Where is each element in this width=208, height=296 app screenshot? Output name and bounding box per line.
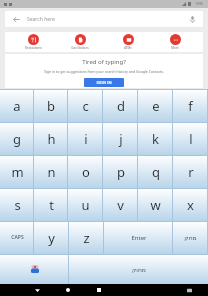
button[interactable]: SIGN IN: [84, 78, 124, 87]
button[interactable]: r: [173, 155, 208, 188]
button[interactable]: Switch keyboard: [183, 284, 195, 296]
staticText: v: [117, 196, 124, 214]
button[interactable]: i: [68, 122, 103, 155]
staticText: b: [47, 97, 55, 115]
button[interactable]: y: [34, 221, 69, 254]
staticText: n: [47, 163, 56, 181]
button[interactable]: t: [34, 188, 68, 221]
staticText: CAPS: [11, 234, 24, 241]
staticText: i: [84, 130, 88, 148]
button[interactable]: Hide keyboard: [31, 284, 43, 296]
button[interactable]: j: [103, 122, 138, 155]
button[interactable]: o: [68, 155, 103, 188]
staticText: h: [47, 130, 56, 148]
button[interactable]: מחוק: [69, 254, 208, 284]
other: Back: [11, 14, 21, 24]
staticText: Search here: [27, 16, 55, 23]
staticText: s: [14, 196, 21, 214]
staticText: t: [49, 196, 54, 214]
other: Voice search: [187, 14, 197, 24]
button[interactable]: q: [138, 155, 173, 188]
staticText: c: [82, 97, 89, 115]
staticText: Restaurants: [25, 46, 42, 50]
staticText: g: [13, 130, 21, 148]
staticText: a: [13, 97, 21, 115]
staticText: ATMs: [124, 46, 132, 50]
button[interactable]: c: [68, 89, 103, 122]
button[interactable]: e: [138, 89, 173, 122]
button[interactable]: k: [138, 122, 173, 155]
staticText: q: [152, 163, 160, 181]
button[interactable]: s: [0, 188, 34, 221]
button[interactable]: b: [34, 89, 68, 122]
button[interactable]: Restaurants: [13, 33, 53, 51]
button[interactable]: More: [155, 33, 195, 51]
staticText: u: [81, 196, 90, 214]
button[interactable]: Back: [5, 11, 203, 27]
staticText: z: [83, 229, 90, 247]
button[interactable]: f: [173, 89, 208, 122]
staticText: More: [171, 46, 179, 50]
button[interactable]: p: [103, 155, 138, 188]
staticText: SIGN IN: [96, 80, 112, 85]
staticText: מחק: [184, 234, 197, 241]
button[interactable]: a: [0, 89, 34, 122]
button[interactable]: Emoji: [0, 254, 69, 284]
button[interactable]: l: [173, 122, 208, 155]
staticText: e: [152, 97, 160, 115]
staticText: x: [187, 196, 194, 214]
button[interactable]: z: [69, 221, 104, 254]
staticText: f: [188, 97, 193, 115]
button[interactable]: Enter: [104, 221, 173, 254]
staticText: k: [152, 130, 159, 148]
button[interactable]: h: [34, 122, 68, 155]
staticText: j: [119, 130, 123, 148]
staticText: Gas Stations: [71, 46, 89, 50]
button[interactable]: Gas Stations: [60, 33, 100, 51]
staticText: 19:06: [195, 2, 203, 6]
button[interactable]: g: [0, 122, 34, 155]
staticText: l: [189, 130, 193, 148]
button[interactable]: n: [34, 155, 68, 188]
button[interactable]: CAPS: [0, 221, 34, 254]
button[interactable]: u: [68, 188, 103, 221]
button[interactable]: d: [103, 89, 138, 122]
staticText: Tired of typing?: [82, 58, 126, 66]
staticText: Sign in to get suggestions from your sea…: [15, 69, 193, 74]
staticText: מחוק: [132, 266, 146, 273]
button[interactable]: x: [173, 188, 208, 221]
staticText: p: [117, 163, 125, 181]
staticText: d: [117, 97, 125, 115]
button[interactable]: Home: [62, 284, 74, 296]
button[interactable]: ATMs: [108, 33, 148, 51]
button[interactable]: Recents: [93, 284, 105, 296]
button[interactable]: m: [0, 155, 34, 188]
button[interactable]: v: [103, 188, 138, 221]
button[interactable]: w: [138, 188, 173, 221]
staticText: o: [82, 163, 90, 181]
staticText: Enter: [131, 234, 147, 242]
staticText: m: [11, 163, 24, 181]
staticText: y: [48, 229, 55, 247]
staticText: w: [150, 196, 161, 214]
button[interactable]: מחק: [173, 221, 208, 254]
staticText: r: [188, 163, 194, 181]
